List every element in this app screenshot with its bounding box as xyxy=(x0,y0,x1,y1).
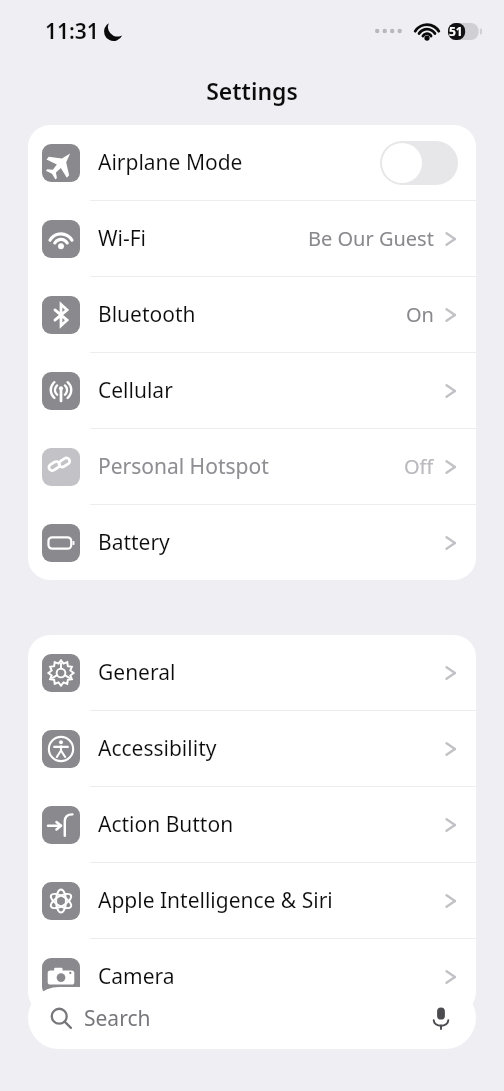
button[interactable]: Bluetooth xyxy=(28,277,476,353)
staticText: On xyxy=(406,301,434,328)
button[interactable]: Cellular xyxy=(28,353,476,429)
staticText: Be Our Guest xyxy=(308,225,434,252)
staticText: Battery xyxy=(98,528,444,557)
button[interactable]: Apple Intelligence & Siri xyxy=(28,863,476,939)
staticText: 51 xyxy=(449,23,463,39)
button[interactable]: Action Button xyxy=(28,787,476,863)
staticText: Personal Hotspot xyxy=(98,452,404,481)
staticText: Cellular xyxy=(98,376,444,405)
button[interactable]: Camera xyxy=(28,939,476,1014)
staticText: Accessibility xyxy=(98,734,444,763)
staticText: General xyxy=(98,658,444,687)
staticText: Airplane Mode xyxy=(98,148,380,177)
staticText: Bluetooth xyxy=(98,300,406,329)
staticText: Settings xyxy=(206,75,298,106)
button[interactable]: Search xyxy=(28,987,476,1049)
button[interactable]: General xyxy=(28,635,476,711)
button[interactable]: Battery xyxy=(28,505,476,580)
staticText: Search xyxy=(84,1004,428,1033)
button[interactable]: Wi-Fi xyxy=(28,201,476,277)
staticText: Off xyxy=(404,453,434,480)
button[interactable]: Airplane Mode xyxy=(28,125,476,201)
staticText: Wi-Fi xyxy=(98,224,308,253)
staticText: Action Button xyxy=(98,810,444,839)
button[interactable]: Voice search xyxy=(428,1005,454,1031)
button[interactable]: Personal Hotspot xyxy=(28,429,476,505)
staticText: Camera xyxy=(98,962,444,991)
button[interactable]: Airplane Mode toggle xyxy=(380,141,458,185)
button[interactable]: Accessibility xyxy=(28,711,476,787)
staticText: 11:31 xyxy=(45,17,99,46)
staticText: Apple Intelligence & Siri xyxy=(98,886,444,915)
